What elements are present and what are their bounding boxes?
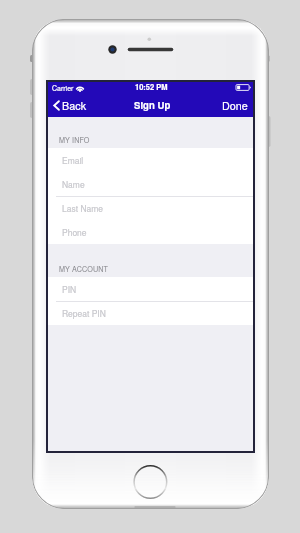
- staticText: Phone: [62, 226, 87, 238]
- button[interactable]: Back: [48, 93, 93, 117]
- staticText: Repeat PIN: [62, 307, 106, 319]
- staticText: Carrier: [52, 83, 74, 93]
- button[interactable]: Done: [217, 93, 253, 117]
- staticText: MY ACCOUNT: [59, 264, 108, 274]
- button[interactable]: Home: [134, 465, 167, 498]
- staticText: PIN: [62, 283, 77, 295]
- staticText: Back: [62, 98, 87, 113]
- button[interactable]: Phone: [48, 220, 253, 244]
- staticText: 10:52 PM: [135, 82, 168, 93]
- button[interactable]: Last Name: [48, 196, 253, 220]
- staticText: MY INFO: [59, 135, 90, 145]
- staticText: Done: [222, 98, 248, 113]
- staticText: Name: [62, 178, 85, 190]
- staticText: Sign Up: [134, 98, 171, 112]
- staticText: Last Name: [62, 202, 104, 214]
- button[interactable]: Repeat PIN: [48, 301, 253, 325]
- button[interactable]: Name: [48, 172, 253, 196]
- staticText: Email: [62, 154, 84, 166]
- button[interactable]: PIN: [48, 277, 253, 301]
- button[interactable]: Email: [48, 148, 253, 172]
